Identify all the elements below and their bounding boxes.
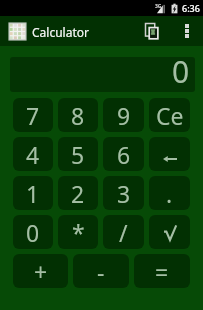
button[interactable]: 3 — [103, 176, 144, 210]
button[interactable]: Ce — [149, 98, 190, 132]
staticText: Ce — [156, 100, 184, 131]
button[interactable]: 6 — [103, 137, 144, 171]
staticText: 0 — [172, 57, 190, 86]
staticText: Calculator — [32, 24, 89, 40]
button[interactable]: 4 — [13, 137, 53, 171]
staticText: + — [34, 256, 48, 287]
button[interactable]: Backspace — [149, 137, 190, 171]
staticText: 5 — [71, 139, 85, 170]
staticText: * — [72, 217, 85, 248]
button[interactable]: Copy — [131, 16, 174, 46]
staticText: 2 — [71, 178, 85, 209]
button[interactable]: 7 — [13, 98, 53, 132]
staticText: 8 — [71, 100, 85, 131]
staticText: 0 — [26, 217, 40, 248]
button[interactable]: More options — [174, 16, 200, 46]
staticText: . — [166, 178, 173, 209]
staticText: 6 — [117, 139, 131, 170]
button[interactable]: * — [58, 215, 98, 249]
staticText: 9 — [117, 100, 131, 131]
button[interactable]: 5 — [58, 137, 98, 171]
button[interactable]: / — [103, 215, 144, 249]
staticText: 3G — [155, 3, 162, 10]
staticText: 7 — [26, 100, 40, 131]
button[interactable]: - — [73, 254, 129, 288]
button[interactable]: . — [149, 176, 190, 210]
button[interactable]: 2 — [58, 176, 98, 210]
button[interactable]: Square root — [149, 215, 190, 249]
staticText: = — [155, 256, 169, 287]
staticText: 1 — [26, 178, 40, 209]
staticText: 4 — [26, 139, 40, 170]
button[interactable]: 8 — [58, 98, 98, 132]
button[interactable]: 9 — [103, 98, 144, 132]
button[interactable]: 0 — [13, 215, 53, 249]
staticText: 3 — [117, 178, 131, 209]
staticText: / — [119, 217, 128, 248]
staticText: - — [97, 256, 105, 287]
button[interactable]: + — [13, 254, 68, 288]
button[interactable]: = — [134, 254, 190, 288]
staticText: 6:36 — [182, 2, 200, 14]
button[interactable]: 1 — [13, 176, 53, 210]
